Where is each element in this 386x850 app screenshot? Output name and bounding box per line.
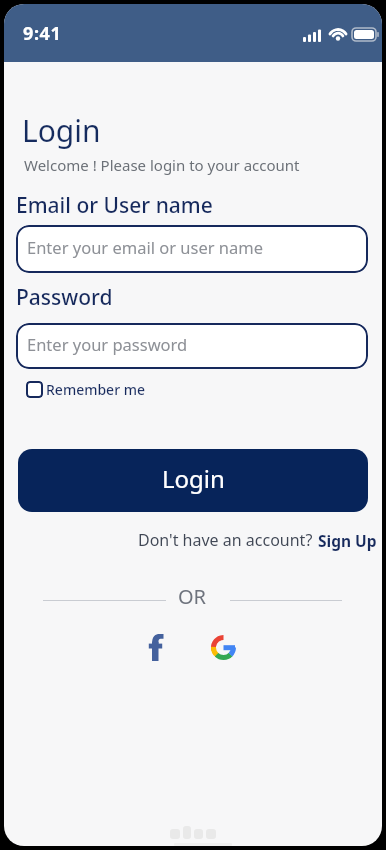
staticText: Welcome ! Please login to your account xyxy=(24,155,300,175)
staticText: Login xyxy=(162,462,225,495)
staticText: Password xyxy=(16,283,113,312)
staticText: Sign Up xyxy=(318,530,377,551)
staticText: OR xyxy=(178,583,207,610)
button[interactable]: Remember me xyxy=(26,380,146,399)
staticText: Login xyxy=(22,110,101,151)
button[interactable] xyxy=(211,635,236,660)
button[interactable]: Don't have an account? xyxy=(138,529,377,551)
button[interactable]: Enter your email or user name xyxy=(16,225,368,273)
staticText: Email or User name xyxy=(16,191,213,220)
staticText: Enter your email or user name xyxy=(27,236,264,258)
button[interactable]: Enter your password xyxy=(16,323,368,369)
staticText: 9:41 xyxy=(23,21,62,46)
button[interactable] xyxy=(148,634,164,661)
staticText: Enter your password xyxy=(27,333,188,355)
button[interactable]: Login xyxy=(18,449,368,512)
staticText: Don't have an account? xyxy=(138,529,313,551)
staticText: Remember me xyxy=(46,380,146,399)
